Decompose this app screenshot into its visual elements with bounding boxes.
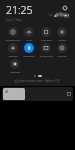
button[interactable]: Recorder xyxy=(7,59,23,73)
staticText: Flashlight xyxy=(41,38,52,41)
staticText: Sun, 7 Sep xyxy=(6,18,22,22)
staticText: Super battery saver xyxy=(19,79,43,83)
staticText: Airplane xyxy=(8,54,18,57)
button[interactable]: Bluetooth xyxy=(21,43,37,57)
button[interactable]: Expand notification xyxy=(67,92,71,96)
button[interactable]: Wi-Fi xyxy=(21,27,37,41)
staticText: Wi-Fi xyxy=(26,38,32,41)
staticText: Network data xyxy=(5,38,21,41)
button[interactable]: Screenshot xyxy=(38,43,54,57)
staticText: Location xyxy=(57,54,67,57)
button[interactable]: Location xyxy=(54,43,70,57)
staticText: 21:25 xyxy=(6,3,33,17)
staticText: vol xyxy=(49,13,53,17)
button[interactable]: Airplane xyxy=(5,43,21,57)
staticText: Sound xyxy=(58,38,66,41)
button[interactable]: Sound xyxy=(54,27,70,41)
staticText: Bluetooth xyxy=(23,54,35,57)
staticText: Battery 53% xyxy=(45,79,60,83)
button[interactable]: Flashlight xyxy=(38,27,54,41)
button[interactable]: Network data xyxy=(5,27,21,41)
button[interactable]: Settings xyxy=(60,3,69,12)
staticText: Screenshot xyxy=(40,54,53,57)
button[interactable]: Expand notification xyxy=(2,87,73,101)
staticText: Recorder xyxy=(10,70,21,73)
